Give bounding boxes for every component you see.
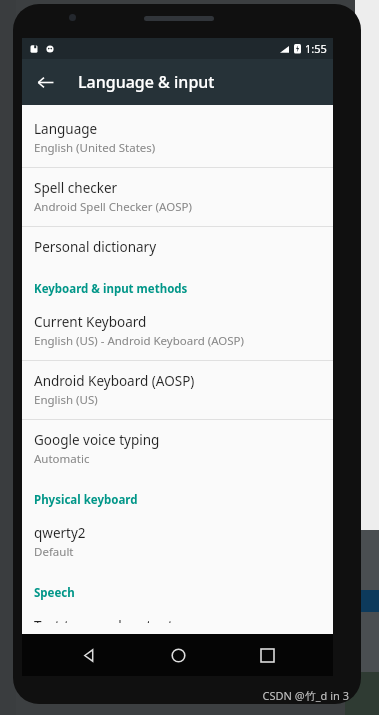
button[interactable]: Recent apps (244, 634, 290, 676)
button[interactable]: Spell checker (22, 168, 333, 227)
staticText: Default (34, 544, 74, 560)
staticText: CSDN @竹_d in 3 (262, 688, 349, 703)
staticText: Language & input (78, 71, 215, 93)
staticText: Android Keyboard (AOSP) (34, 372, 195, 390)
staticText: Speech (34, 585, 75, 601)
staticText: Text-to-speech output (34, 617, 173, 623)
staticText: Keyboard & input methods (34, 281, 188, 297)
staticText: Automatic (34, 451, 90, 467)
button[interactable]: Current Keyboard (22, 302, 333, 361)
staticText: English (US) (34, 392, 98, 408)
staticText: English (United States) (34, 140, 156, 156)
button[interactable]: Android Keyboard (AOSP) (22, 361, 333, 420)
staticText: Physical keyboard (34, 492, 138, 508)
button[interactable]: Google voice typing (22, 420, 333, 478)
button[interactable]: Language (22, 109, 333, 168)
staticText: qwerty2 (34, 524, 86, 542)
button[interactable]: Home (155, 634, 201, 676)
staticText: Android Spell Checker (AOSP) (34, 199, 192, 215)
button[interactable]: Back (65, 634, 111, 676)
staticText: 1:55 (305, 41, 327, 56)
staticText: Google voice typing (34, 431, 160, 449)
button[interactable]: Personal dictionary (22, 227, 333, 267)
staticText: Language (34, 120, 98, 138)
staticText: Spell checker (34, 179, 118, 197)
button[interactable]: Back (22, 59, 68, 105)
staticText: English (US) - Android Keyboard (AOSP) (34, 333, 245, 349)
staticText: Current Keyboard (34, 313, 147, 331)
staticText: Personal dictionary (34, 238, 157, 256)
button[interactable]: Text-to-speech output (22, 606, 333, 634)
button[interactable]: qwerty2 (22, 513, 333, 571)
